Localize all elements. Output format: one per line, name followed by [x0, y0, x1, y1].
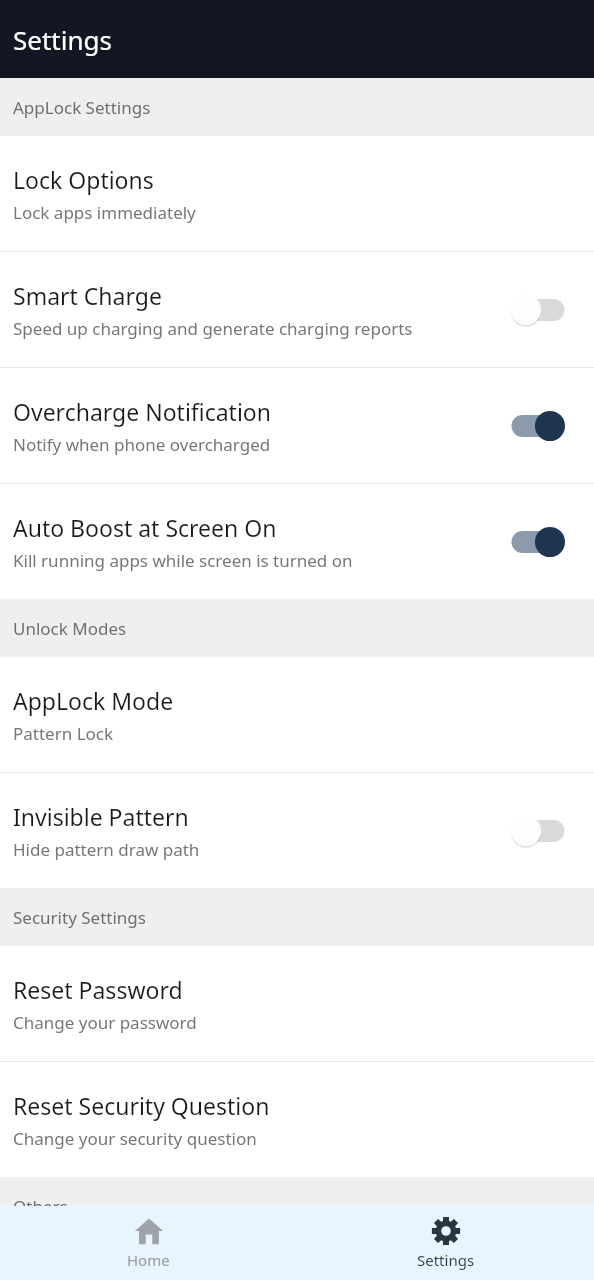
staticText: Change your password	[13, 1011, 197, 1034]
staticText: Hide pattern draw path	[13, 838, 200, 861]
staticText: Overcharge Notification	[13, 396, 271, 427]
staticText: Lock apps immediately	[13, 201, 196, 224]
staticText: Invisible Pattern	[13, 801, 189, 832]
button[interactable]: Smart Charge	[0, 252, 594, 367]
staticText: Others	[13, 1195, 68, 1218]
button[interactable]: Toggle off	[510, 815, 566, 847]
button[interactable]: Toggle off	[510, 294, 566, 326]
button[interactable]: Settings	[297, 1206, 594, 1280]
button[interactable]: Home	[0, 1206, 297, 1280]
staticText: Speed up charging and generate charging …	[13, 317, 413, 340]
staticText: Settings	[13, 22, 112, 57]
staticText: Reset Password	[13, 974, 183, 1005]
button[interactable]: AppLock Mode	[0, 657, 594, 772]
button[interactable]: Auto Boost at Screen On	[0, 484, 594, 599]
staticText: Change your security question	[13, 1127, 257, 1150]
staticText: Home	[127, 1250, 170, 1270]
staticText: Auto Boost at Screen On	[13, 512, 277, 543]
button[interactable]: Invisible Pattern	[0, 773, 594, 888]
staticText: Smart Charge	[13, 280, 162, 311]
staticText: Settings	[417, 1250, 475, 1270]
staticText: Unlock Modes	[13, 617, 127, 640]
staticText: AppLock Mode	[13, 685, 174, 716]
button[interactable]: Toggle on	[510, 526, 566, 558]
staticText: Kill running apps while screen is turned…	[13, 549, 353, 572]
button[interactable]: Reset Security Question	[0, 1062, 594, 1177]
staticText: Reset Security Question	[13, 1090, 270, 1121]
staticText: Pattern Lock	[13, 722, 114, 745]
button[interactable]: Lock Options	[0, 136, 594, 251]
staticText: AppLock Settings	[13, 96, 151, 119]
button[interactable]: Reset Password	[0, 946, 594, 1061]
staticText: Lock Options	[13, 164, 154, 195]
staticText: Security Settings	[13, 906, 146, 929]
button[interactable]: Toggle on	[510, 410, 566, 442]
button[interactable]: Overcharge Notification	[0, 368, 594, 483]
staticText: Notify when phone overcharged	[13, 433, 271, 456]
